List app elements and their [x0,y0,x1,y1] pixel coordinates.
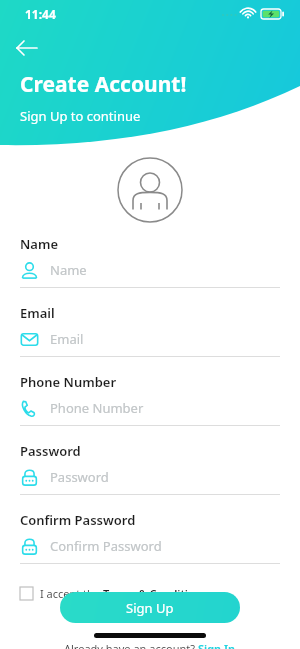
button[interactable]: Confirm Password [20,529,280,563]
button[interactable]: I accept the [20,580,280,606]
button[interactable]: Sign In [198,641,236,649]
staticText: Name [20,235,58,253]
staticText: Phone Number [50,399,144,417]
staticText: Password [20,442,81,460]
staticText: Email [20,304,55,322]
button[interactable]: Password [20,460,280,494]
staticText: Sign Up to continue [20,107,141,125]
staticText: I accept the [40,586,103,601]
button[interactable]: Name [20,253,280,287]
staticText: Create Account! [20,70,187,99]
staticText: Confirm Password [20,511,136,529]
staticText: 11:44 [25,6,56,22]
button[interactable]: Sign Up [60,592,240,623]
staticText: Password [50,468,109,486]
staticText: Already have an account? [64,641,198,649]
button[interactable]: Phone Number [20,391,280,425]
staticText: Confirm Password [50,537,162,555]
button[interactable]: Back [10,34,44,62]
staticText: Phone Number [20,373,117,391]
staticText: Sign Up [126,599,174,617]
staticText: Name [50,261,87,279]
button[interactable]: Email [20,322,280,356]
staticText: Terms & Conditions [103,586,208,601]
staticText: Email [50,330,84,348]
